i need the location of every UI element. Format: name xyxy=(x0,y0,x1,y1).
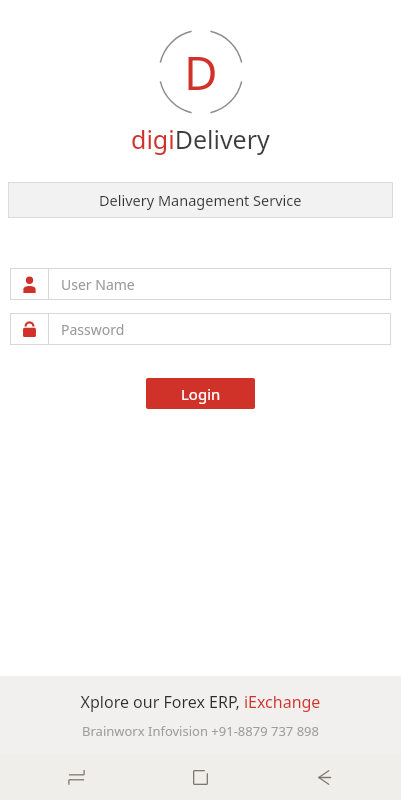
staticText: Brainworx Infovision +91-8879 737 898 xyxy=(0,722,401,740)
button[interactable]: Recent apps xyxy=(29,755,124,800)
staticText: Delivery Management Service xyxy=(99,190,302,210)
staticText: Login xyxy=(181,384,221,404)
button[interactable]: Password xyxy=(10,313,391,345)
button[interactable]: Home xyxy=(153,755,248,800)
staticText: D xyxy=(184,41,218,104)
button[interactable]: User Name xyxy=(10,268,391,300)
button[interactable]: Login xyxy=(146,378,255,409)
button[interactable]: Back xyxy=(277,755,372,800)
button[interactable]: Xplore our Forex ERP, iExchange xyxy=(0,691,401,713)
button[interactable]: Delivery Management Service xyxy=(8,182,393,218)
staticText: Password xyxy=(61,320,125,339)
staticText: digiDelivery xyxy=(131,122,270,156)
staticText: User Name xyxy=(61,275,135,294)
